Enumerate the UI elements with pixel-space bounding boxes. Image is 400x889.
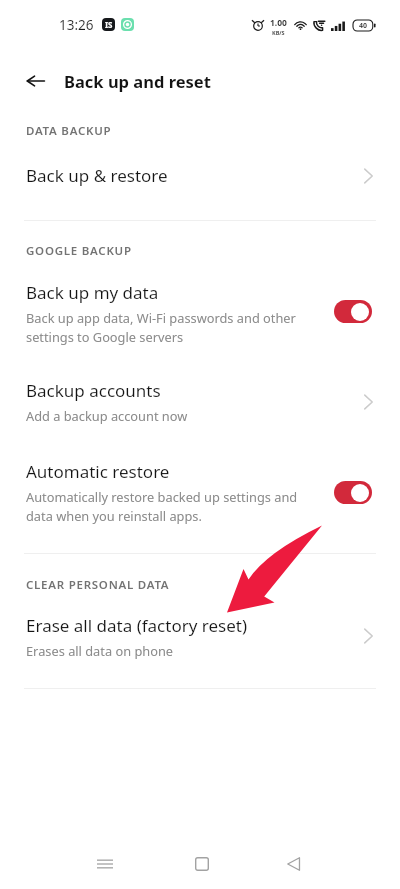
staticText: IS <box>105 19 113 30</box>
staticText: DATA BACKUP <box>26 123 112 139</box>
button[interactable] <box>0 367 400 431</box>
button[interactable]: Toggle <box>334 300 372 323</box>
staticText: CLEAR PERSONAL DATA <box>26 577 170 593</box>
button[interactable] <box>0 269 400 353</box>
button[interactable]: Recent apps <box>73 832 137 889</box>
staticText: Back up app data, Wi-Fi passwords and ot… <box>26 309 296 346</box>
staticText: 1.00 <box>270 17 287 29</box>
staticText: 40 <box>359 21 368 31</box>
staticText: Add a backup account now <box>26 407 188 424</box>
button[interactable]: Toggle <box>334 481 372 504</box>
button[interactable]: Back <box>261 832 325 889</box>
staticText: GOOGLE BACKUP <box>26 243 132 259</box>
button[interactable] <box>0 152 400 200</box>
button[interactable] <box>0 602 400 666</box>
button[interactable]: Back <box>11 57 59 105</box>
button[interactable] <box>0 448 400 532</box>
staticText: Automatically restore backed up settings… <box>26 488 298 525</box>
staticText: Back up & restore <box>26 164 168 187</box>
staticText: Back up my data <box>26 281 159 304</box>
staticText: Automatic restore <box>26 460 170 483</box>
button[interactable]: Home <box>170 832 234 889</box>
staticText: Back up and reset <box>64 70 211 92</box>
staticText: Backup accounts <box>26 379 161 402</box>
staticText: KB/S <box>272 29 285 36</box>
staticText: Erase all data (factory reset) <box>26 614 248 637</box>
staticText: 13:26 <box>59 16 94 34</box>
staticText: Erases all data on phone <box>26 642 174 659</box>
